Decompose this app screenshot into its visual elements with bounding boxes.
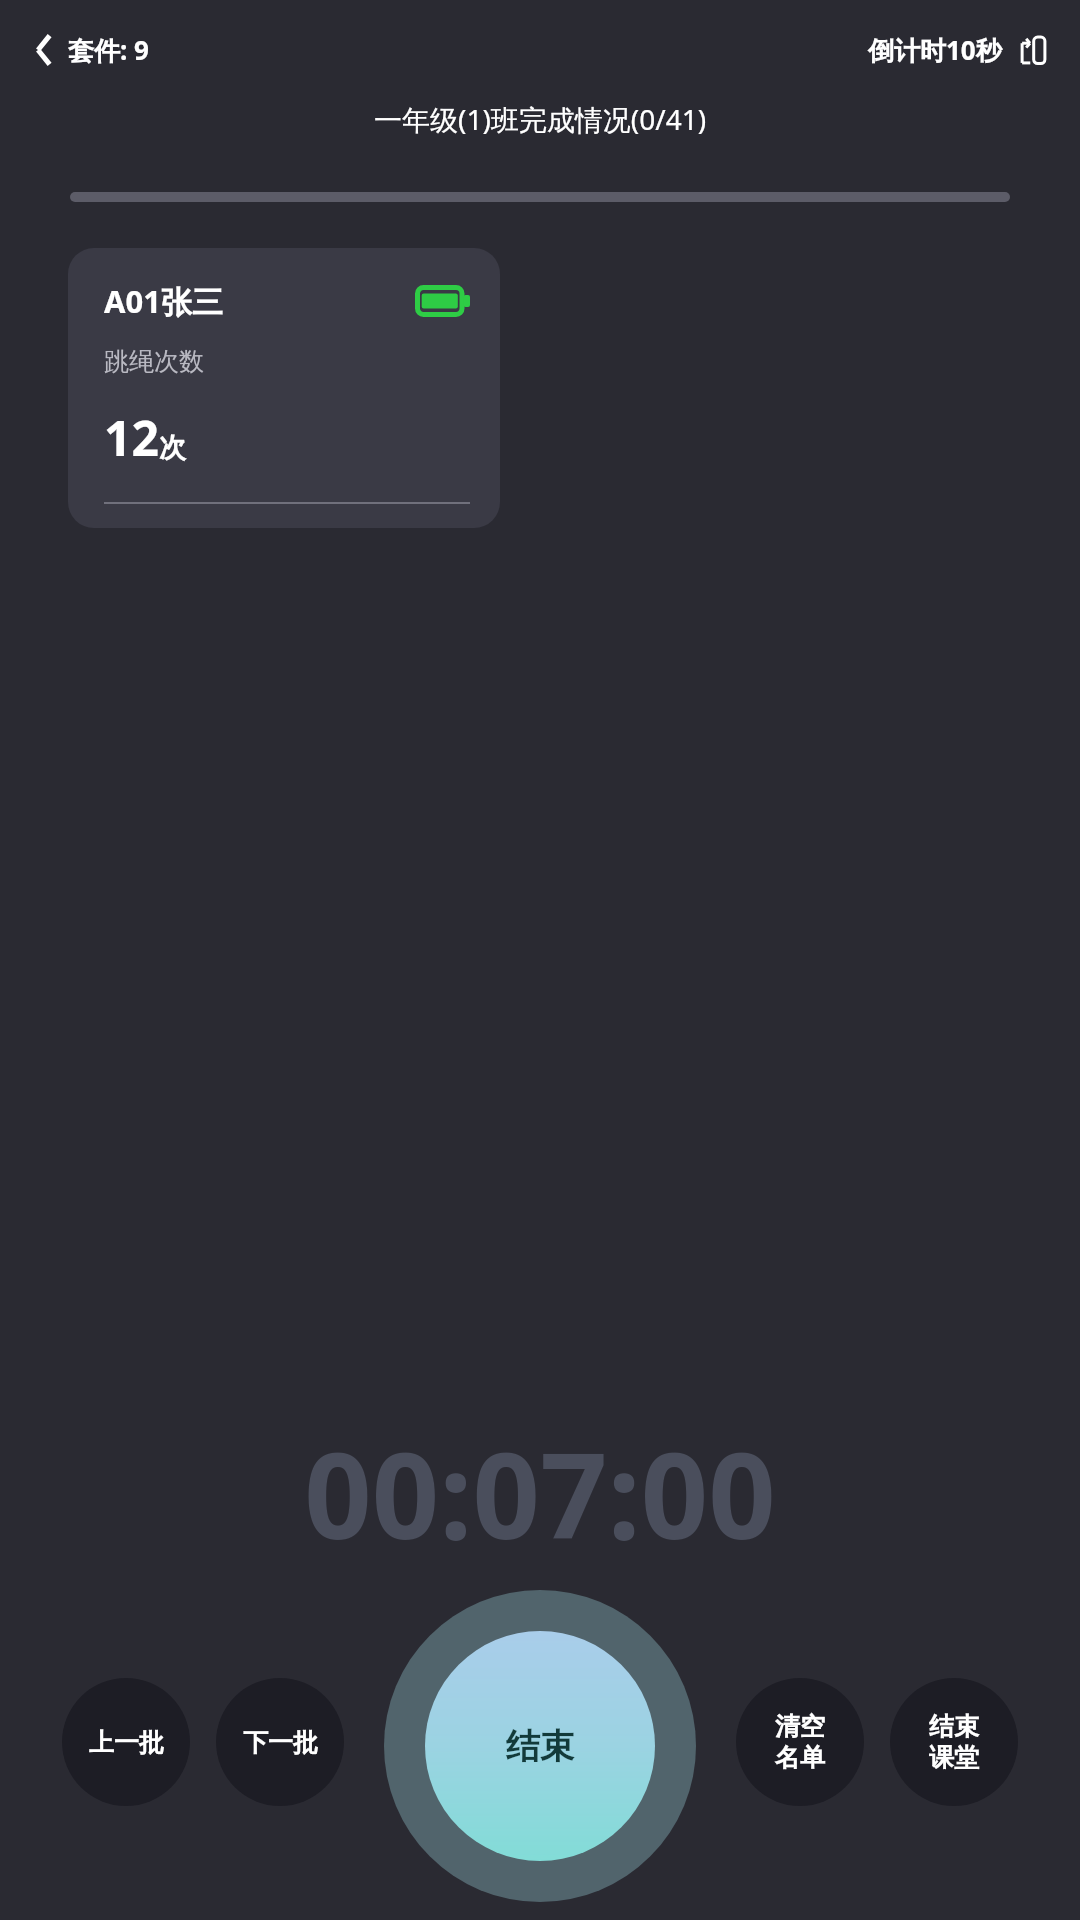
staticText: 一年级(1)班完成情况(0/41) <box>374 100 707 138</box>
staticText: 名单 <box>775 1742 825 1773</box>
button[interactable]: 结束 <box>890 1678 1018 1806</box>
button[interactable]: 下一批 <box>216 1678 344 1806</box>
staticText: 12 <box>104 405 159 470</box>
button[interactable]: A01张三 <box>68 248 500 528</box>
staticText: 00:07:00 <box>304 1413 776 1574</box>
other: Battery full <box>416 286 470 316</box>
staticText: 课堂 <box>929 1742 979 1773</box>
staticText: 结束 <box>506 1725 574 1768</box>
staticText: 次 <box>159 431 186 465</box>
staticText: A01张三 <box>104 280 223 322</box>
staticText: 跳绳次数 <box>104 346 204 377</box>
button[interactable]: 清空 <box>736 1678 864 1806</box>
staticText: 上一批 <box>89 1727 164 1758</box>
staticText: 倒计时10秒 <box>868 32 1002 68</box>
button[interactable]: 结束 <box>384 1590 696 1902</box>
button[interactable]: 套件: 9 <box>24 24 159 76</box>
staticText: 清空 <box>775 1711 825 1742</box>
button[interactable]: 上一批 <box>62 1678 190 1806</box>
button[interactable]: Rotate screen <box>1016 33 1050 67</box>
staticText: 结束 <box>929 1711 979 1742</box>
button[interactable]: 倒计时10秒 <box>862 24 1056 76</box>
staticText: 下一批 <box>243 1727 318 1758</box>
staticText: 套件: 9 <box>68 32 149 68</box>
